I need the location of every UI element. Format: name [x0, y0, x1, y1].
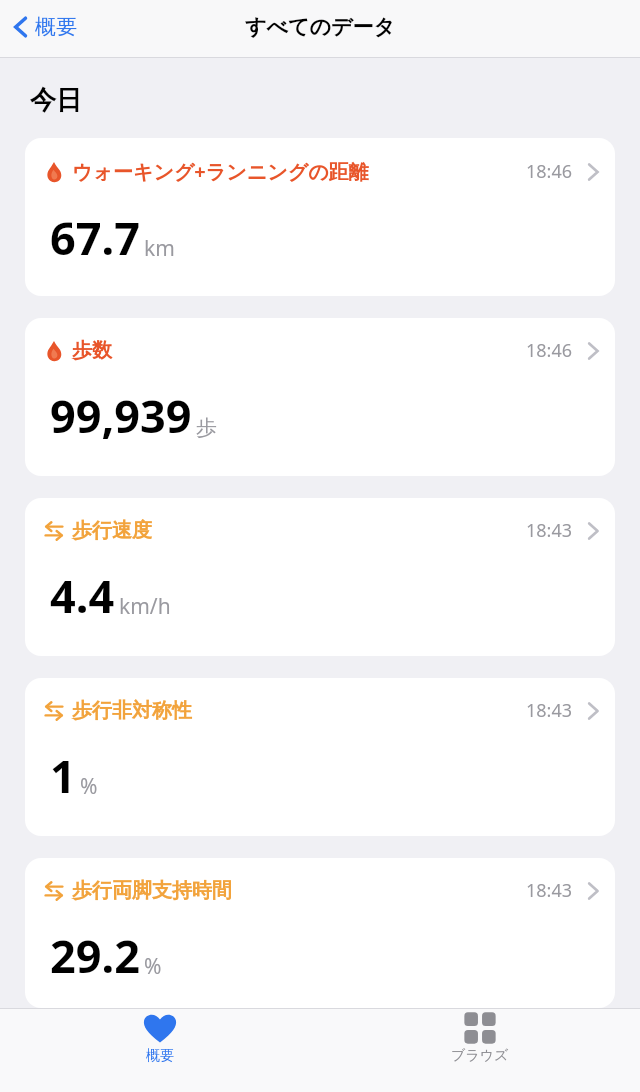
button[interactable]: 歩行速度 — [25, 498, 615, 656]
staticText: km/h — [119, 592, 171, 621]
staticText: km — [144, 234, 175, 263]
button[interactable]: 歩行両脚支持時間 — [25, 858, 615, 1008]
staticText: 1 — [50, 745, 76, 806]
staticText: 18:46 — [526, 338, 573, 363]
staticText: % — [144, 952, 162, 981]
staticText: 概要 — [35, 14, 77, 40]
staticText: 歩行速度 — [72, 518, 152, 543]
button[interactable]: 概要 — [119, 1009, 201, 1069]
staticText: 歩数 — [72, 338, 112, 363]
staticText: 18:43 — [526, 518, 573, 543]
button[interactable]: 概要 — [8, 10, 83, 44]
staticText: ブラウズ — [451, 1047, 509, 1065]
button[interactable]: ブラウズ — [427, 1009, 533, 1069]
staticText: 4.4 — [50, 565, 115, 626]
staticText: 概要 — [146, 1047, 174, 1065]
button[interactable]: ウォーキング+ランニングの距離 — [25, 138, 615, 296]
staticText: 今日 — [30, 84, 82, 117]
button[interactable]: 歩数 — [25, 318, 615, 476]
staticText: % — [80, 772, 98, 801]
button[interactable]: 歩行非対称性 — [25, 678, 615, 836]
staticText: 99,939 — [50, 385, 192, 446]
staticText: 歩 — [196, 415, 217, 441]
staticText: すべてのデータ — [245, 14, 395, 40]
staticText: 18:46 — [526, 159, 573, 184]
staticText: ウォーキング+ランニングの距離 — [72, 158, 369, 185]
staticText: 29.2 — [50, 925, 140, 986]
staticText: 18:43 — [526, 878, 573, 903]
staticText: 18:43 — [526, 698, 573, 723]
staticText: 67.7 — [50, 207, 140, 268]
staticText: 歩行非対称性 — [72, 698, 192, 723]
staticText: 歩行両脚支持時間 — [72, 878, 232, 903]
